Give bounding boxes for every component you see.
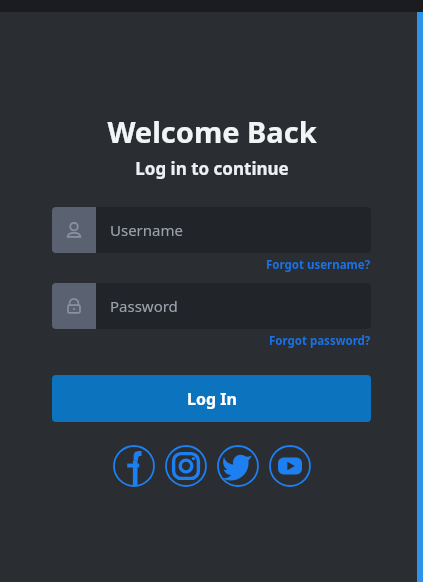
button[interactable]: Instagram — [164, 444, 208, 488]
button[interactable]: Forgot password? — [269, 333, 371, 349]
button[interactable]: Username — [52, 207, 371, 253]
staticText: Log in to continue — [135, 157, 289, 180]
staticText: Forgot username? — [266, 257, 371, 273]
button[interactable]: Twitter — [216, 444, 260, 488]
button[interactable]: Password — [52, 283, 371, 329]
button[interactable]: YouTube — [268, 444, 312, 488]
button[interactable]: Forgot username? — [266, 257, 371, 273]
staticText: Password — [110, 296, 178, 316]
staticText: Forgot password? — [269, 333, 371, 349]
staticText: Log In — [187, 388, 237, 410]
button[interactable]: Facebook — [112, 444, 156, 488]
staticText: Username — [110, 220, 183, 240]
button[interactable]: Log In — [52, 375, 371, 422]
staticText: Welcome Back — [107, 112, 317, 151]
